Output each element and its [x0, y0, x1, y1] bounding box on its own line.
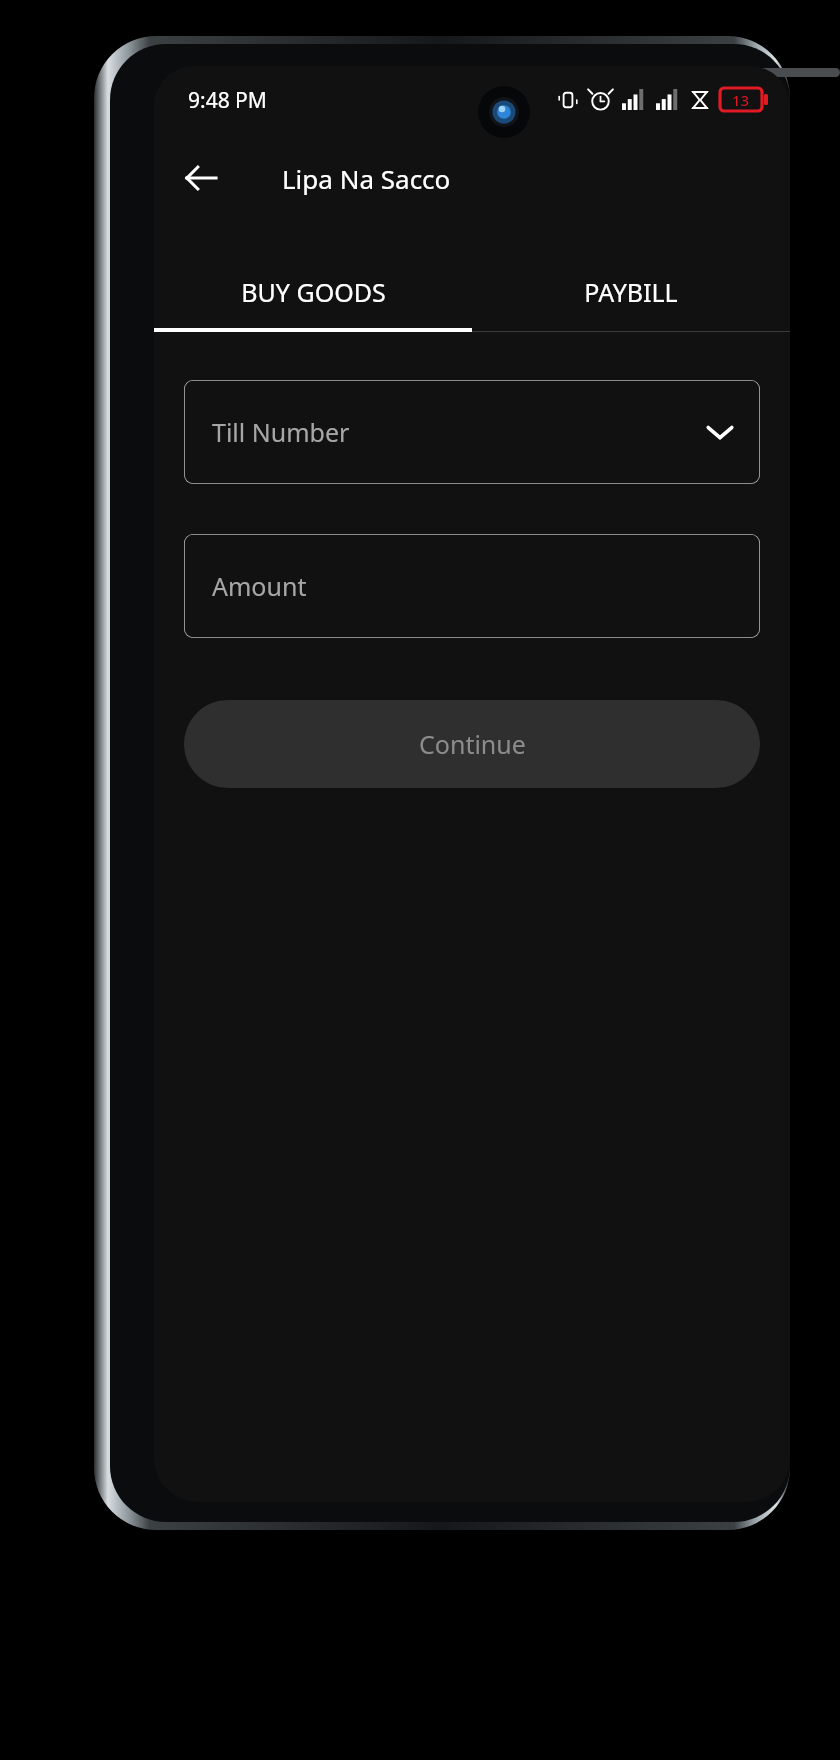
staticText: Amount [212, 569, 307, 603]
button[interactable]: Continue [184, 700, 760, 788]
staticText: 13 [732, 90, 750, 110]
button[interactable]: BUY GOODS [154, 256, 472, 328]
staticText: 9:48 PM [188, 86, 267, 115]
button[interactable]: Till Number [184, 380, 760, 484]
button[interactable]: Amount [184, 534, 760, 638]
staticText: PAYBILL [584, 275, 678, 309]
staticText: Continue [419, 727, 526, 761]
button[interactable]: PAYBILL [472, 256, 790, 328]
staticText: BUY GOODS [241, 275, 386, 309]
staticText: Till Number [212, 415, 350, 449]
staticText: Lipa Na Sacco [282, 161, 451, 196]
button[interactable]: Back [170, 147, 232, 209]
